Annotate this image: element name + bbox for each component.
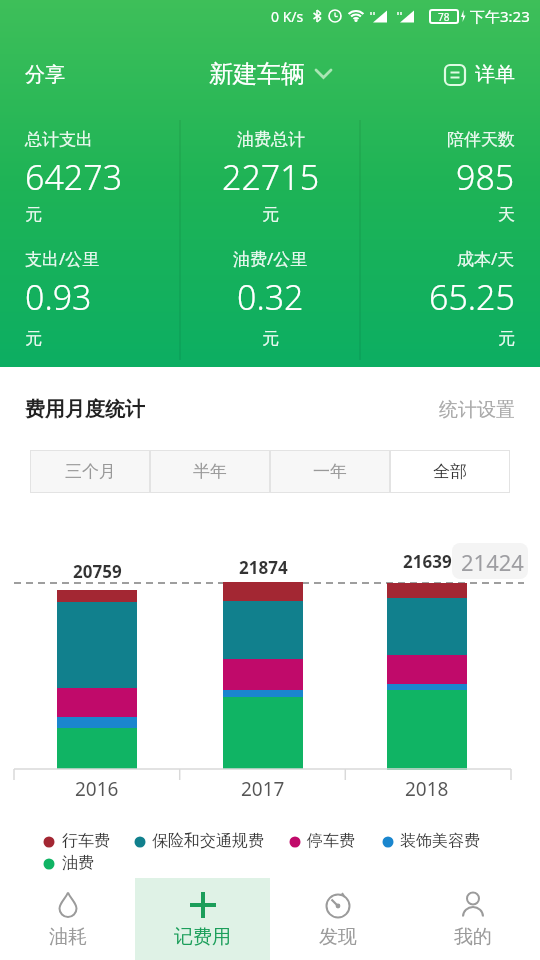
staticText: 新建车辆	[209, 59, 305, 89]
button[interactable]: 发现	[270, 878, 405, 960]
staticText: 78	[438, 10, 450, 24]
staticText: 元	[262, 204, 279, 225]
staticText: 65.25	[429, 274, 515, 320]
button[interactable]: 分享	[25, 62, 65, 87]
staticText: 发现	[319, 925, 357, 949]
staticText: 元	[25, 204, 42, 225]
staticText: 装饰美容费	[400, 831, 480, 851]
button[interactable]: 我的	[405, 878, 540, 960]
staticText: 油费总计	[237, 129, 305, 150]
button[interactable]: 详单	[443, 62, 515, 87]
button[interactable]: 油耗	[0, 878, 135, 960]
staticText: 成本/天	[457, 247, 515, 270]
staticText: 油费	[62, 853, 94, 873]
staticText: 20759	[73, 560, 122, 583]
staticText: 总计支出	[25, 129, 93, 150]
staticText: 统计设置	[439, 398, 515, 422]
button[interactable]: 全部	[390, 450, 510, 493]
staticText: 陪伴天数	[447, 129, 515, 150]
staticText: 21874	[239, 556, 288, 579]
staticText: 保险和交通规费	[152, 831, 264, 851]
button[interactable]: 记费用	[135, 878, 270, 960]
staticText: 0 K/s	[271, 7, 304, 26]
staticText: 天	[498, 204, 515, 225]
button[interactable]: 一年	[270, 450, 390, 493]
staticText: 2017	[241, 776, 285, 802]
staticText: 全部	[433, 461, 467, 482]
staticText: 2018	[405, 776, 449, 802]
staticText: 元	[25, 328, 42, 349]
button[interactable]: 三个月	[30, 450, 150, 493]
staticText: 21639	[403, 550, 452, 573]
staticText: 详单	[475, 62, 515, 87]
staticText: 行车费	[62, 831, 110, 851]
staticText: 记费用	[174, 925, 231, 949]
staticText: 油耗	[49, 925, 87, 949]
staticText: 我的	[454, 925, 492, 949]
button[interactable]: 新建车辆	[209, 59, 332, 89]
staticText: 三个月	[65, 461, 116, 482]
staticText: 一年	[313, 461, 347, 482]
staticText: 64273	[25, 154, 123, 200]
staticText: 0.93	[25, 274, 92, 320]
staticText: 21424	[461, 547, 524, 577]
staticText: 下午3:23	[470, 6, 530, 26]
staticText: 2016	[75, 776, 119, 802]
staticText: 费用月度统计	[25, 397, 145, 422]
staticText: 半年	[193, 461, 227, 482]
staticText: 支出/公里	[25, 247, 100, 270]
staticText: 元	[262, 328, 279, 349]
staticText: 元	[498, 328, 515, 349]
button[interactable]: 半年	[150, 450, 270, 493]
button[interactable]: 统计设置	[439, 398, 515, 422]
staticText: 油费/公里	[233, 247, 308, 270]
staticText: 22715	[222, 154, 320, 200]
staticText: 停车费	[307, 831, 355, 851]
staticText: 0.32	[237, 274, 304, 320]
staticText: 985	[456, 154, 515, 200]
staticText: 分享	[25, 62, 65, 87]
